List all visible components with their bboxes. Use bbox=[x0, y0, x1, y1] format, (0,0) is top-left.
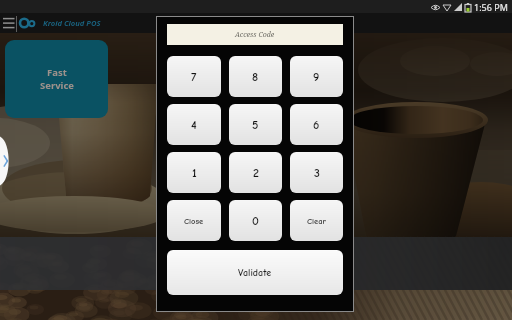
button[interactable]: Menu bbox=[0, 13, 16, 33]
staticText: Clear bbox=[307, 216, 327, 226]
staticText: Close bbox=[184, 216, 204, 226]
staticText: 0 bbox=[252, 214, 259, 228]
staticText: 9 bbox=[313, 70, 320, 84]
staticText: Access Code bbox=[235, 30, 275, 40]
staticText: 2 bbox=[253, 166, 259, 180]
button[interactable]: 6 bbox=[290, 104, 343, 145]
staticText: Validate bbox=[238, 267, 272, 279]
staticText: Fast Service bbox=[40, 66, 74, 92]
button[interactable]: Close bbox=[167, 200, 221, 241]
staticText: Kroid Cloud POS bbox=[43, 18, 101, 28]
staticText: 1 bbox=[192, 166, 197, 180]
staticText: 6 bbox=[313, 118, 320, 132]
button[interactable]: 0 bbox=[229, 200, 282, 241]
button[interactable]: 3 bbox=[290, 152, 343, 193]
staticText: 5 bbox=[252, 118, 259, 132]
button[interactable]: Open navigation panel bbox=[0, 135, 14, 187]
staticText: 3 bbox=[314, 166, 320, 180]
button[interactable]: Clear bbox=[290, 200, 343, 241]
staticText: 8 bbox=[252, 70, 259, 84]
button[interactable]: 8 bbox=[229, 56, 282, 97]
button[interactable]: Validate bbox=[167, 250, 343, 295]
button[interactable]: 7 bbox=[167, 56, 221, 97]
button[interactable]: 5 bbox=[229, 104, 282, 145]
button[interactable]: Fast Service bbox=[5, 40, 108, 118]
staticText: 4 bbox=[191, 118, 197, 132]
button[interactable]: 2 bbox=[229, 152, 282, 193]
button[interactable]: 1 bbox=[167, 152, 221, 193]
staticText: 7 bbox=[191, 70, 197, 84]
button[interactable]: 9 bbox=[290, 56, 343, 97]
staticText: 1:56 PM bbox=[474, 1, 508, 13]
button[interactable]: 4 bbox=[167, 104, 221, 145]
